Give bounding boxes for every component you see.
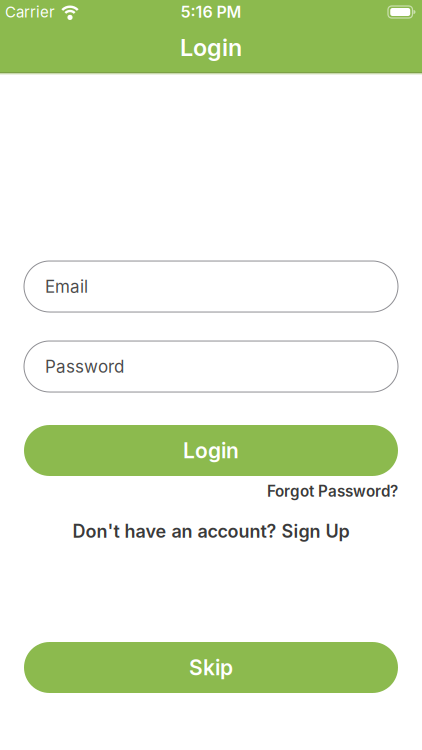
staticText: 5:16 PM [180,2,241,22]
staticText: Email [45,276,88,297]
staticText: Password [45,356,124,377]
button[interactable]: Email [24,261,398,312]
staticText: Forgot Password? [267,482,398,500]
staticText: Login [183,438,239,463]
button[interactable]: Don't have an account? Sign Up [72,520,349,542]
staticText: Skip [189,655,233,680]
button[interactable]: Forgot Password? [267,482,398,500]
button[interactable]: Password [24,341,398,392]
staticText: Login [180,33,242,62]
button[interactable]: Skip [24,642,398,693]
button[interactable]: Login [24,425,398,476]
staticText: Don't have an account? Sign Up [72,520,349,542]
staticText: Carrier [5,3,55,21]
